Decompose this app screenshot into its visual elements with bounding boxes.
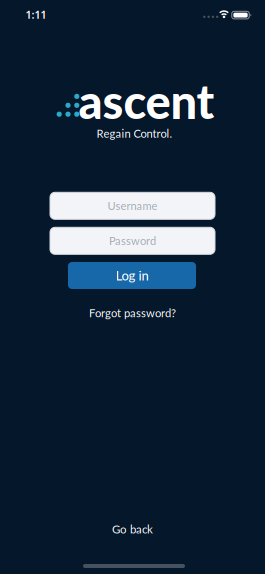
button[interactable]: Go back	[106, 516, 159, 542]
staticText: Password	[109, 234, 156, 247]
button[interactable]: Password	[50, 227, 215, 254]
button[interactable]: Log in	[68, 262, 196, 289]
staticText: Log in	[115, 268, 148, 283]
staticText: Username	[107, 199, 157, 212]
button[interactable]: Username	[50, 192, 215, 219]
staticText: Go back	[112, 522, 153, 536]
button[interactable]: Forgot password?	[83, 300, 182, 326]
staticText: Forgot password?	[89, 306, 176, 320]
staticText: 1:11	[25, 7, 46, 22]
staticText: Regain Control.	[96, 127, 172, 140]
staticText: ascent	[78, 73, 214, 129]
